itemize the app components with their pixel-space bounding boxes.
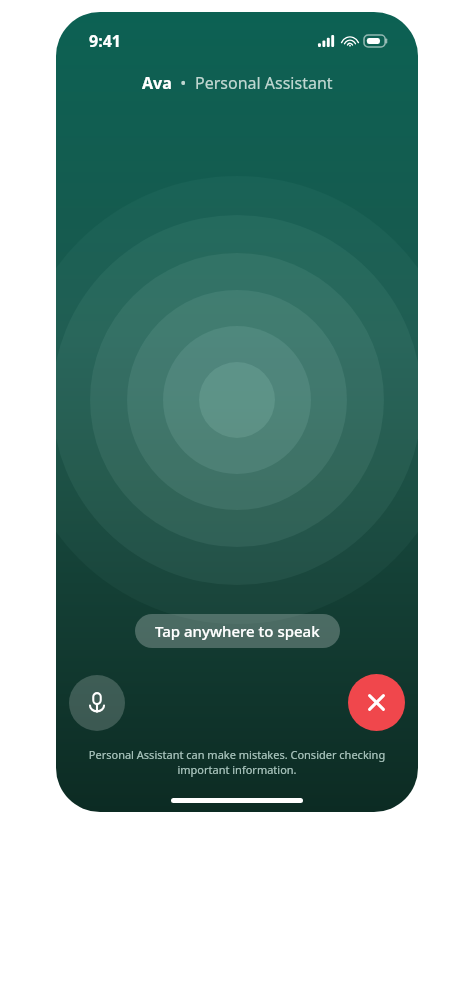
button[interactable]: Tap anywhere to speak: [135, 614, 340, 648]
button[interactable]: End conversation: [348, 674, 405, 731]
staticText: Personal Assistant: [195, 72, 333, 94]
staticText: 9:41: [89, 30, 121, 52]
button[interactable]: Mute microphone: [69, 675, 125, 731]
button[interactable]: 9:41: [56, 12, 418, 812]
staticText: Ava: [142, 72, 172, 94]
staticText: Tap anywhere to speak: [155, 621, 320, 641]
staticText: •: [172, 72, 195, 94]
staticText: Personal Assistant can make mistakes. Co…: [84, 747, 390, 777]
